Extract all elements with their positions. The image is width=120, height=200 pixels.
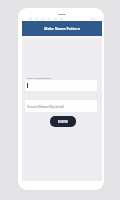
button[interactable] — [25, 80, 97, 91]
button[interactable]: Second Name(Optional) — [25, 100, 97, 112]
button[interactable]: Make Name Pattern — [22, 21, 102, 36]
staticText: DONE — [58, 119, 68, 124]
staticText: Second Name(Optional) — [27, 104, 65, 109]
staticText: Make Name Pattern — [44, 26, 81, 31]
button[interactable]: DONE — [50, 116, 76, 127]
staticText: First Name(Required) — [27, 76, 52, 79]
